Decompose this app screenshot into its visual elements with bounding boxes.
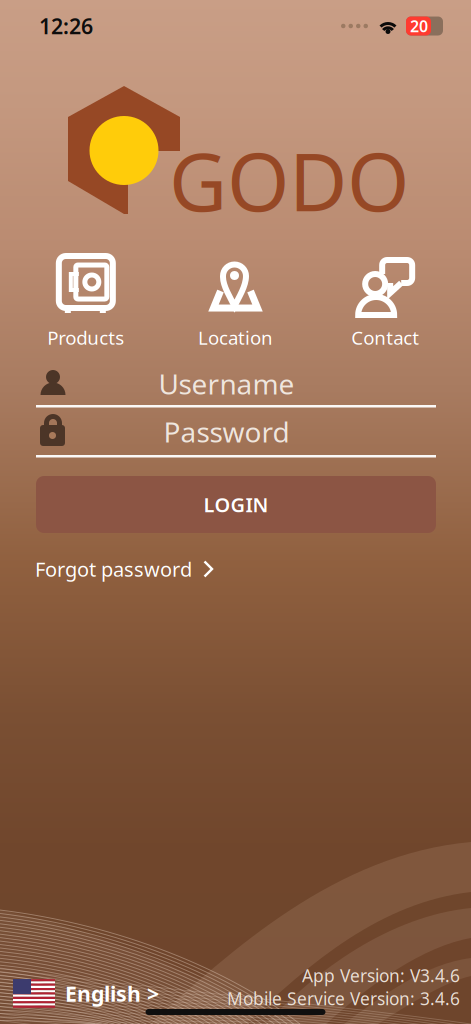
button[interactable]: LOGIN <box>36 476 436 533</box>
button[interactable]: Location <box>161 256 310 350</box>
button[interactable]: Products <box>11 256 161 350</box>
staticText: LOGIN <box>203 491 268 518</box>
staticText: App Version: V3.4.6 <box>302 964 460 987</box>
staticText: English > <box>65 979 159 1008</box>
staticText: Forgot password <box>35 556 192 582</box>
staticText: 20 <box>410 15 428 37</box>
button[interactable]: English > <box>0 979 159 1010</box>
button[interactable]: Contact <box>310 256 460 350</box>
staticText: Password <box>163 413 289 450</box>
staticText: Mobile Service Version: 3.4.6 <box>227 987 460 1010</box>
button[interactable]: Forgot password <box>35 554 471 584</box>
staticText: Username <box>158 365 294 402</box>
staticText: GODO <box>169 127 409 233</box>
staticText: Contact <box>351 325 419 350</box>
staticText: Location <box>198 325 273 350</box>
staticText: Products <box>47 325 124 350</box>
staticText: 12:26 <box>39 12 93 40</box>
